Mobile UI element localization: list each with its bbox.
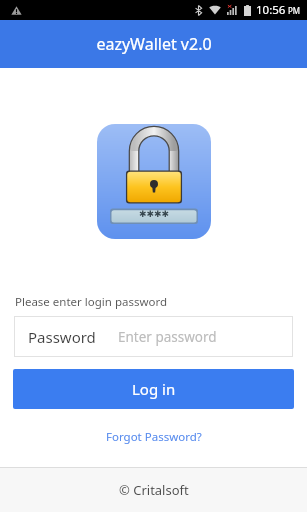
button[interactable]: Password <box>14 316 293 357</box>
staticText: 10:56 <box>256 2 286 18</box>
staticText: eazyWallet v2.0 <box>96 33 212 55</box>
staticText: Password <box>28 327 96 347</box>
staticText: PM <box>288 5 301 16</box>
button[interactable]: Log in <box>13 369 294 409</box>
staticText: Log in <box>132 379 176 399</box>
button[interactable]: Forgot Password? <box>98 425 210 449</box>
staticText: Please enter login password <box>15 294 168 310</box>
staticText: Enter password <box>118 328 217 346</box>
staticText: ✱✱✱✱ <box>139 209 170 219</box>
staticText: © Critalsoft <box>119 481 189 499</box>
